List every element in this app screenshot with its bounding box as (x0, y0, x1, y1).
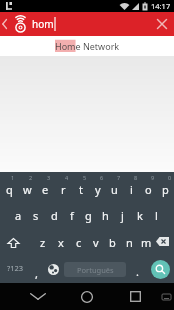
staticText: m (141, 235, 152, 250)
button[interactable]: . (129, 253, 146, 283)
button[interactable]: c (70, 226, 87, 253)
button[interactable]: 5 (72, 172, 89, 199)
staticText: 5 (83, 174, 87, 181)
button[interactable]: n (121, 226, 138, 253)
staticText: d (51, 208, 58, 223)
staticText: c (76, 235, 82, 250)
staticText: 8 (134, 174, 138, 181)
staticText: y (95, 182, 101, 197)
staticText: hom (32, 17, 54, 31)
staticText: 2 (29, 174, 33, 181)
staticText: 6 (100, 174, 104, 181)
staticText: g (85, 208, 92, 223)
button[interactable] (43, 253, 61, 283)
staticText: w (23, 182, 32, 197)
staticText: Português (77, 265, 114, 275)
button[interactable]: h (97, 199, 114, 226)
button[interactable]: 6 (89, 172, 106, 199)
button[interactable]: m (138, 226, 155, 253)
button[interactable]: s (27, 199, 45, 226)
button[interactable] (0, 226, 34, 253)
staticText: 9 (151, 174, 155, 181)
button[interactable]: 2 (18, 172, 36, 199)
staticText: 3 (47, 174, 51, 181)
staticText: r (61, 182, 66, 197)
button[interactable] (121, 283, 149, 310)
staticText: . (136, 264, 139, 279)
button[interactable]: 0 (157, 172, 174, 199)
staticText: , (35, 266, 38, 281)
button[interactable] (155, 226, 174, 253)
button[interactable]: 9 (140, 172, 157, 199)
staticText: q (6, 182, 13, 197)
button[interactable]: b (104, 226, 121, 253)
staticText: a (15, 208, 22, 223)
button[interactable]: z (34, 226, 52, 253)
staticText: 1 (11, 174, 15, 181)
staticText: i (130, 182, 133, 197)
staticText: 0 (168, 174, 172, 181)
button[interactable]: ?123 (0, 253, 30, 283)
staticText: Home Network (55, 40, 120, 52)
staticText: v (93, 235, 99, 250)
button[interactable]: 3 (36, 172, 54, 199)
staticText: f (70, 208, 74, 223)
button[interactable] (146, 253, 174, 283)
button[interactable] (158, 283, 174, 310)
button[interactable]: 1 (0, 172, 18, 199)
button[interactable]: 7 (106, 172, 123, 199)
staticText: ?123 (7, 263, 24, 273)
staticText: u (111, 182, 118, 197)
button[interactable]: a (9, 199, 27, 226)
staticText: t (79, 182, 83, 197)
button[interactable]: 8 (123, 172, 140, 199)
staticText: k (137, 208, 143, 223)
staticText: 4 (65, 174, 69, 181)
button[interactable] (0, 12, 10, 36)
button[interactable]: 4 (54, 172, 72, 199)
staticText: p (162, 182, 169, 197)
staticText: e (42, 182, 49, 197)
button[interactable]: Home Network (0, 36, 174, 56)
staticText: b (109, 235, 116, 250)
staticText: n (126, 235, 133, 250)
staticText: o (145, 182, 152, 197)
button[interactable]: g (80, 199, 97, 226)
button[interactable]: f (63, 199, 80, 226)
button[interactable]: l (148, 199, 165, 226)
staticText: 7 (117, 174, 121, 181)
button[interactable]: k (131, 199, 148, 226)
button[interactable]: , (30, 253, 43, 283)
button[interactable]: d (45, 199, 63, 226)
button[interactable] (20, 283, 56, 310)
button[interactable] (73, 283, 101, 310)
button[interactable]: x (52, 226, 70, 253)
staticText: 14:17 (151, 1, 171, 11)
staticText: x (58, 235, 64, 250)
button[interactable]: j (114, 199, 131, 226)
button[interactable] (150, 12, 174, 36)
staticText: z (40, 235, 46, 250)
staticText: j (121, 208, 124, 223)
staticText: s (33, 208, 39, 223)
button[interactable]: v (87, 226, 104, 253)
staticText: l (155, 208, 158, 223)
staticText: h (102, 208, 109, 223)
button[interactable]: Português (64, 253, 126, 283)
button[interactable] (10, 12, 30, 36)
